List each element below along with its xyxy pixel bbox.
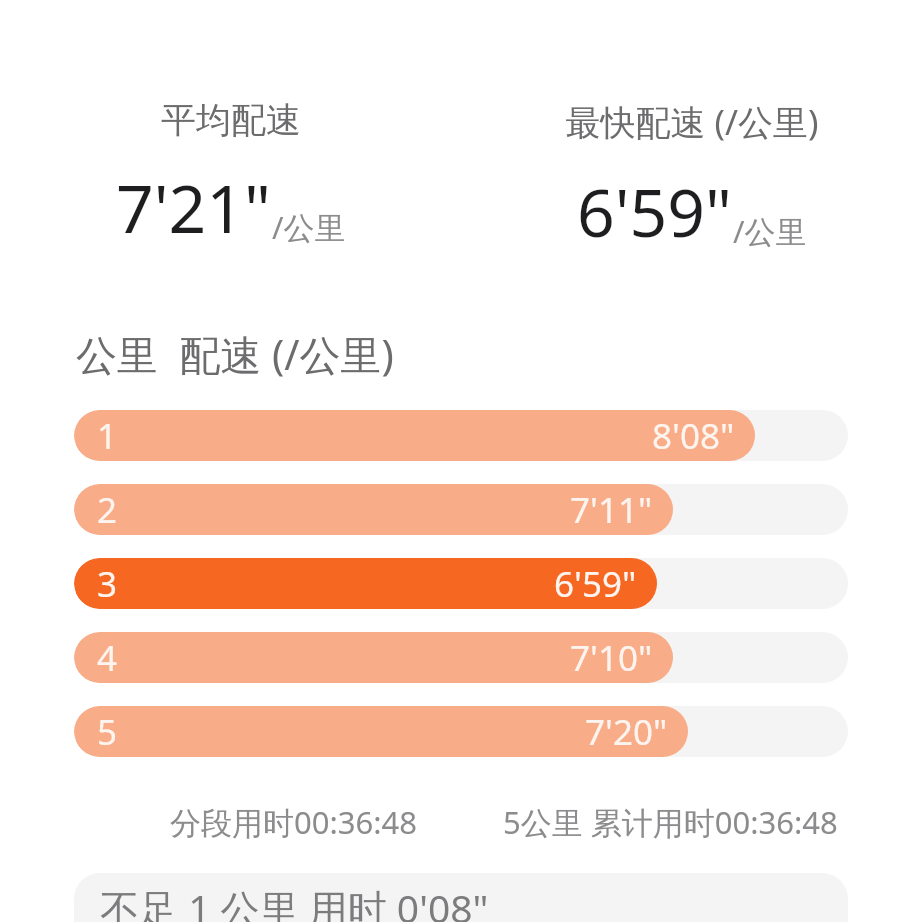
button[interactable]: 1 bbox=[74, 410, 848, 461]
staticText: 最快配速 (/公里) bbox=[565, 98, 819, 146]
staticText: /公里 bbox=[733, 210, 807, 252]
staticText: 分段用时00:36:48 bbox=[170, 801, 418, 843]
staticText: 4 bbox=[97, 634, 118, 682]
staticText: 3 bbox=[97, 560, 118, 608]
staticText: 5公里 累计用时00:36:48 bbox=[503, 801, 838, 843]
staticText: 1 bbox=[97, 412, 118, 460]
staticText: 不足 1 公里 用时 0'08" bbox=[100, 881, 489, 922]
staticText: 7'20" bbox=[585, 708, 668, 756]
button[interactable]: 3 bbox=[74, 558, 848, 609]
staticText: 公里 配速 (/公里) bbox=[76, 326, 394, 382]
staticText: 8'08" bbox=[652, 412, 735, 460]
button[interactable]: 不足 1 公里 用时 0'08" bbox=[74, 873, 848, 922]
staticText: 7'21" bbox=[116, 162, 272, 252]
staticText: 5 bbox=[97, 708, 118, 756]
button[interactable]: 2 bbox=[74, 484, 848, 535]
staticText: 7'11" bbox=[570, 486, 653, 534]
staticText: 7'10" bbox=[570, 634, 653, 682]
staticText: 平均配速 bbox=[161, 98, 301, 142]
staticText: 2 bbox=[97, 486, 118, 534]
button[interactable]: 5 bbox=[74, 706, 848, 757]
staticText: /公里 bbox=[272, 206, 346, 248]
button[interactable]: 4 bbox=[74, 632, 848, 683]
staticText: 6'59" bbox=[577, 166, 733, 256]
staticText: 6'59" bbox=[554, 560, 637, 608]
